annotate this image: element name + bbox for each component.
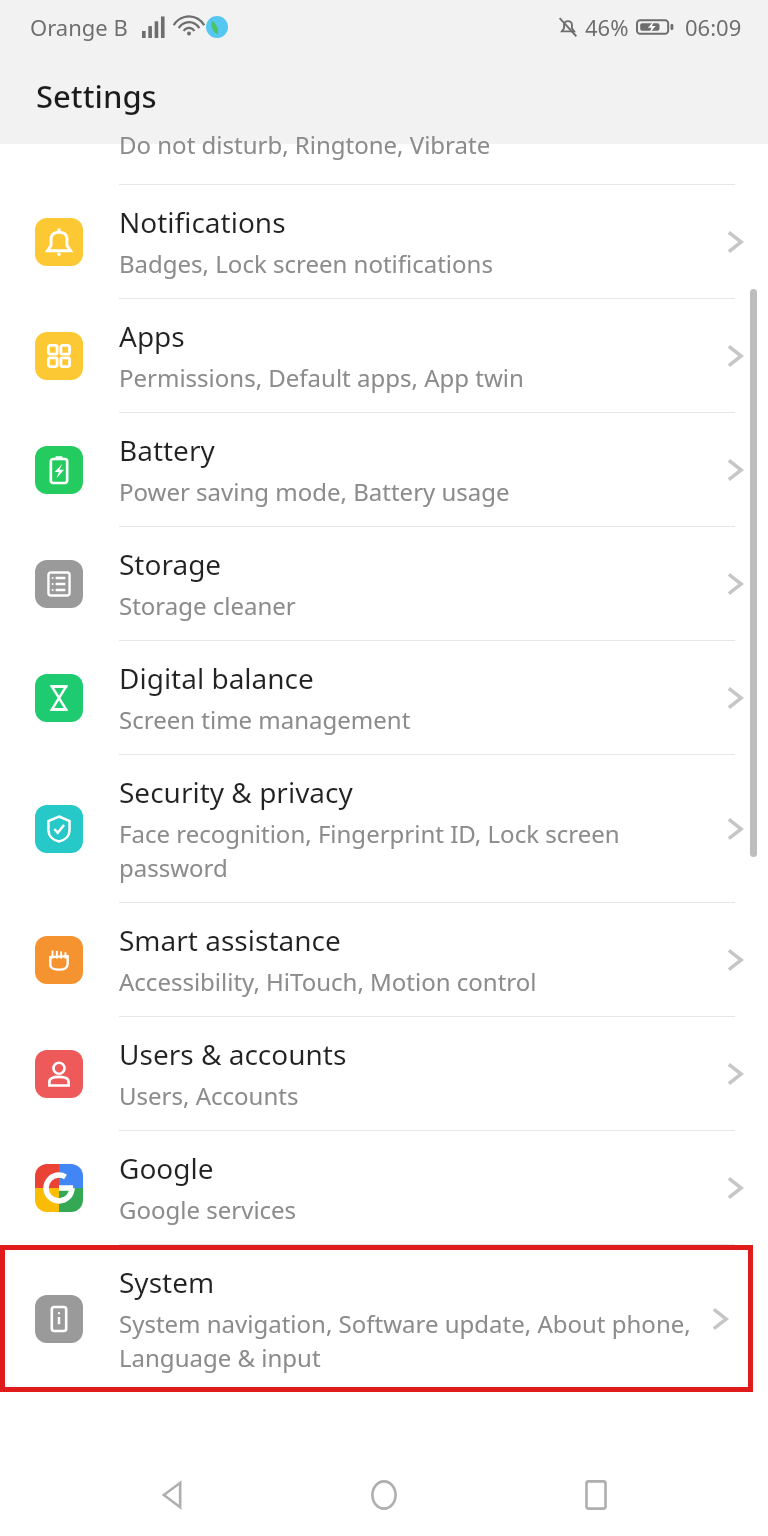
button[interactable]: Google [0, 1131, 768, 1244]
staticText: Apps [119, 317, 185, 355]
staticText: Power saving mode, Battery usage [119, 475, 510, 508]
button[interactable]: Back [132, 1455, 212, 1535]
staticText: Badges, Lock screen notifications [119, 247, 493, 280]
staticText: 46% [585, 12, 629, 42]
button[interactable]: Apps [0, 299, 768, 412]
staticText: System navigation, Software update, Abou… [119, 1307, 699, 1374]
staticText: Security & privacy [119, 773, 353, 811]
button[interactable]: Battery [0, 413, 768, 526]
staticText: Do not disturb, Ringtone, Vibrate [119, 128, 491, 161]
staticText: Smart assistance [119, 921, 341, 959]
button[interactable]: Smart assistance [0, 903, 768, 1016]
button[interactable]: Notifications [0, 185, 768, 298]
button[interactable]: Storage [0, 527, 768, 640]
staticText: Users & accounts [119, 1035, 347, 1073]
staticText: Users, Accounts [119, 1079, 299, 1112]
button[interactable]: Digital balance [0, 641, 768, 754]
staticText: Permissions, Default apps, App twin [119, 361, 524, 394]
staticText: Google [119, 1149, 214, 1187]
staticText: Face recognition, Fingerprint ID, Lock s… [119, 817, 714, 884]
button[interactable]: Home [344, 1455, 424, 1535]
staticText: System [119, 1263, 215, 1301]
button[interactable]: Recent apps [556, 1455, 636, 1535]
staticText: Digital balance [119, 659, 314, 697]
staticText: Google services [119, 1193, 297, 1226]
staticText: Screen time management [119, 703, 411, 736]
staticText: Notifications [119, 203, 286, 241]
staticText: Storage [119, 545, 222, 583]
staticText: Accessibility, HiTouch, Motion control [119, 965, 537, 998]
staticText: Settings [36, 75, 157, 117]
staticText: 06:09 [685, 12, 742, 42]
button[interactable]: Security & privacy [0, 755, 768, 902]
button[interactable]: System [0, 1245, 753, 1392]
staticText: Battery [119, 431, 215, 469]
staticText: Storage cleaner [119, 589, 296, 622]
staticText: Orange B [30, 12, 128, 42]
button[interactable]: Users & accounts [0, 1017, 768, 1130]
